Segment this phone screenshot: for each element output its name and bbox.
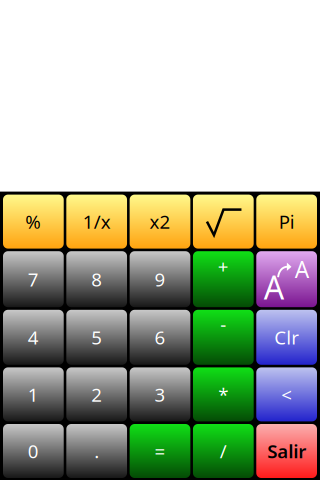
button[interactable]: 1	[3, 367, 64, 421]
button[interactable]: 9	[130, 251, 190, 307]
button[interactable]: 5	[66, 310, 127, 365]
staticText: /	[220, 439, 227, 463]
button[interactable]: 8	[66, 251, 127, 307]
staticText: 4	[28, 325, 39, 350]
staticText: A	[264, 266, 284, 308]
button[interactable]: 6	[130, 310, 190, 365]
staticText: 1	[28, 382, 39, 407]
staticText: <	[281, 382, 292, 407]
staticText: 9	[154, 267, 165, 292]
staticText: 0	[28, 439, 39, 463]
button[interactable]: Font size	[256, 251, 317, 307]
staticText: *	[218, 382, 228, 407]
button[interactable]: %	[3, 195, 64, 249]
staticText: Clr	[274, 325, 299, 350]
button[interactable]: 0	[3, 424, 64, 478]
staticText: 8	[91, 267, 102, 292]
staticText: -	[220, 312, 226, 337]
button[interactable]: x2	[130, 195, 190, 249]
staticText: 2	[91, 382, 102, 407]
staticText: 7	[28, 267, 39, 292]
staticText: +	[218, 254, 229, 279]
button[interactable]: 2	[66, 367, 127, 421]
button[interactable]: 1/x	[66, 195, 127, 249]
button[interactable]: .	[66, 424, 127, 478]
button[interactable]: +	[193, 251, 254, 307]
button[interactable]: 7	[3, 251, 64, 307]
button[interactable]: -	[193, 310, 254, 365]
staticText: %	[25, 209, 41, 234]
button[interactable]: /	[193, 424, 254, 478]
staticText: Salir	[267, 439, 306, 463]
staticText: 1/x	[83, 209, 111, 234]
button[interactable]: 4	[3, 310, 64, 365]
button[interactable]: Pi	[256, 195, 317, 249]
staticText: 6	[154, 325, 165, 350]
button[interactable]: Clr	[256, 310, 317, 365]
button[interactable]: <	[256, 367, 317, 421]
staticText: =	[154, 439, 165, 463]
button[interactable]: *	[193, 367, 254, 421]
button[interactable]: =	[130, 424, 190, 478]
staticText: .	[94, 439, 99, 463]
staticText: x2	[149, 209, 170, 234]
button[interactable]: 3	[130, 367, 190, 421]
button[interactable]: Square root	[193, 195, 254, 249]
staticText: Pi	[279, 209, 295, 234]
button[interactable]: Salir	[256, 424, 317, 478]
staticText: 5	[91, 325, 102, 350]
staticText: 3	[154, 382, 165, 407]
staticText: A	[295, 254, 309, 284]
